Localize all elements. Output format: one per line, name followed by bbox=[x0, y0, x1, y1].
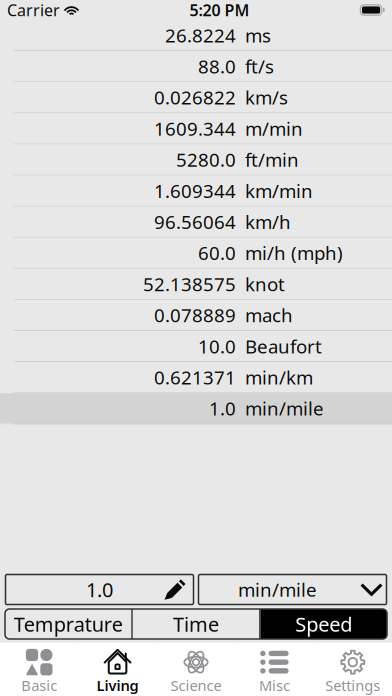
staticText: 0.078889 bbox=[154, 303, 236, 327]
staticText: 10.0 bbox=[198, 334, 236, 359]
staticText: 1.609344 bbox=[154, 178, 236, 203]
staticText: 1609.344 bbox=[154, 116, 236, 141]
button[interactable]: Living bbox=[78, 645, 157, 696]
button[interactable]: 88.0 bbox=[0, 51, 392, 82]
staticText: Beaufort bbox=[245, 334, 322, 359]
staticText: 0.026822 bbox=[154, 85, 236, 110]
staticText: ft/min bbox=[245, 147, 299, 172]
button[interactable]: Time bbox=[133, 609, 259, 639]
staticText: knot bbox=[245, 272, 285, 296]
staticText: 1.0 bbox=[86, 576, 113, 603]
staticText: Science bbox=[170, 676, 221, 695]
button[interactable]: 10.0 bbox=[0, 331, 392, 362]
staticText: 26.8224 bbox=[165, 23, 236, 48]
button[interactable]: min/mile bbox=[198, 574, 386, 604]
staticText: 1.0 bbox=[209, 396, 236, 421]
button[interactable]: Misc bbox=[235, 645, 314, 696]
staticText: 88.0 bbox=[198, 54, 236, 79]
staticText: 60.0 bbox=[198, 240, 236, 265]
button[interactable]: 26.8224 bbox=[0, 20, 392, 51]
staticText: ft/s bbox=[245, 54, 274, 79]
staticText: m/min bbox=[245, 116, 303, 141]
button[interactable]: Basic bbox=[0, 645, 78, 696]
staticText: Living bbox=[97, 676, 139, 695]
staticText: Carrier bbox=[7, 0, 60, 21]
button[interactable]: 1.0 bbox=[5, 574, 193, 604]
staticText: Speed bbox=[295, 611, 352, 637]
staticText: Settings bbox=[325, 676, 380, 695]
staticText: 5280.0 bbox=[176, 147, 236, 172]
staticText: km/h bbox=[245, 209, 291, 234]
button[interactable]: Settings bbox=[314, 645, 392, 696]
button[interactable]: 60.0 bbox=[0, 238, 392, 269]
staticText: km/s bbox=[245, 85, 288, 110]
staticText: Basic bbox=[21, 676, 57, 695]
button[interactable]: 1.0 bbox=[0, 393, 392, 424]
staticText: ms bbox=[245, 23, 271, 48]
staticText: min/mile bbox=[245, 396, 324, 421]
staticText: min/km bbox=[245, 365, 313, 390]
staticText: Temprature bbox=[14, 611, 123, 637]
button[interactable]: 0.026822 bbox=[0, 82, 392, 113]
staticText: 5:20 PM bbox=[189, 0, 249, 21]
button[interactable]: 0.078889 bbox=[0, 300, 392, 331]
staticText: 96.56064 bbox=[154, 209, 236, 234]
button[interactable]: Speed bbox=[261, 609, 387, 639]
staticText: 0.621371 bbox=[154, 365, 236, 390]
button[interactable]: Science bbox=[157, 645, 235, 696]
button[interactable]: 96.56064 bbox=[0, 207, 392, 238]
button[interactable]: 1.609344 bbox=[0, 175, 392, 207]
button[interactable]: Temprature bbox=[5, 609, 131, 639]
button[interactable]: 52.138575 bbox=[0, 269, 392, 300]
button[interactable]: 5280.0 bbox=[0, 144, 392, 175]
button[interactable]: 1609.344 bbox=[0, 113, 392, 144]
staticText: mach bbox=[245, 303, 293, 327]
button[interactable]: 0.621371 bbox=[0, 362, 392, 393]
staticText: Time bbox=[173, 611, 219, 637]
staticText: Misc bbox=[259, 676, 290, 695]
staticText: min/mile bbox=[238, 577, 317, 602]
staticText: mi/h (mph) bbox=[245, 240, 343, 265]
staticText: 52.138575 bbox=[143, 272, 236, 296]
staticText: km/min bbox=[245, 178, 313, 203]
